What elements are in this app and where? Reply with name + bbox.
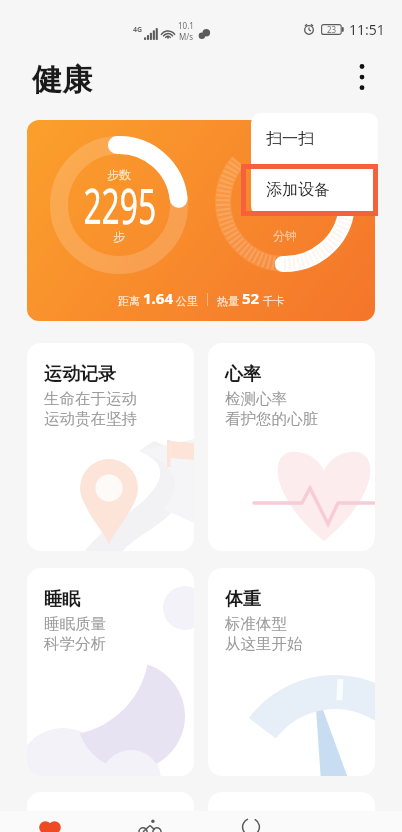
button[interactable]: 睡眠 xyxy=(27,568,194,776)
button[interactable]: 发现 xyxy=(200,811,301,832)
staticText: 2295 xyxy=(83,171,156,235)
button[interactable] xyxy=(208,792,375,832)
staticText: 添加设备 xyxy=(266,180,330,200)
button[interactable]: 扫一扫 xyxy=(251,113,378,164)
button[interactable]: More options xyxy=(348,62,376,90)
staticText: 生命在于运动 运动贵在坚持 xyxy=(44,389,137,428)
button[interactable]: 运动记录 xyxy=(27,343,194,551)
staticText: 标准体型 从这里开始 xyxy=(225,614,303,653)
staticText: 千卡 xyxy=(260,293,285,308)
staticText: 心率 xyxy=(225,363,261,386)
staticText: M/s xyxy=(179,31,194,42)
staticText: 1.64 xyxy=(143,288,173,308)
staticText: 公里 xyxy=(173,293,198,308)
staticText: 步 xyxy=(113,229,125,243)
button[interactable]: 健康 xyxy=(0,811,100,832)
button[interactable]: 运动 xyxy=(100,811,200,832)
staticText: 运动记录 xyxy=(44,363,116,386)
button[interactable]: 心率 xyxy=(208,343,375,551)
button[interactable]: 添加设备 xyxy=(251,164,378,216)
staticText: 健康 xyxy=(32,61,92,99)
staticText: 睡眠质量 科学分析 xyxy=(44,614,106,653)
button[interactable]: 步数 xyxy=(27,120,375,321)
staticText: 扫一扫 xyxy=(266,129,314,149)
staticText: 10.1 xyxy=(178,20,194,31)
staticText: 52 xyxy=(242,288,260,308)
staticText: 距离 xyxy=(118,293,143,308)
staticText: 检测心率 看护您的心脏 xyxy=(225,389,318,428)
staticText: 11:51 xyxy=(349,20,385,39)
staticText: 体重 xyxy=(225,588,261,611)
staticText: 步数 xyxy=(107,167,131,181)
button[interactable] xyxy=(27,792,194,832)
staticText: 分钟 xyxy=(273,228,297,242)
staticText: 热量 xyxy=(217,293,242,308)
staticText: 23 xyxy=(327,24,337,35)
staticText: 4G xyxy=(133,25,143,35)
button[interactable]: 体重 xyxy=(208,568,375,776)
staticText: 睡眠 xyxy=(44,588,80,611)
